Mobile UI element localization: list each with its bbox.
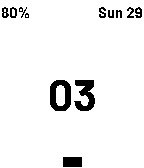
button[interactable]: Sun 29 [98,3,143,21]
staticText: 03 [48,67,97,120]
button[interactable]: 80% [1,3,31,21]
